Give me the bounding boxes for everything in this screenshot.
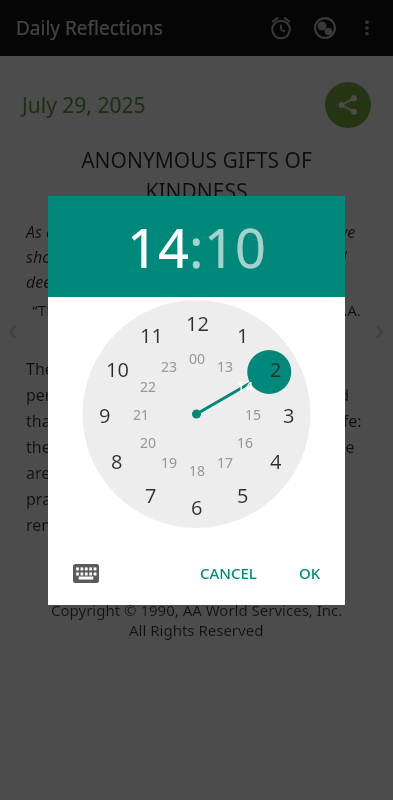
button[interactable]: Set reminder	[259, 6, 303, 50]
button[interactable]: OK	[287, 553, 333, 593]
staticText: 13	[217, 357, 234, 376]
staticText: ‹	[8, 308, 18, 349]
button[interactable]: 1	[227, 322, 259, 346]
button[interactable]: 18	[181, 458, 213, 482]
staticText: Copyright © 1990, AA World Services, Inc…	[51, 600, 343, 620]
staticText: 8	[111, 448, 123, 472]
button[interactable]: 13	[209, 354, 241, 378]
staticText: :	[189, 210, 204, 284]
staticText: 1	[237, 322, 249, 346]
button[interactable]: 7	[135, 482, 167, 506]
staticText: 14	[127, 210, 189, 284]
staticText: There was a time when I thought being a …	[26, 358, 367, 536]
staticText: 14	[237, 377, 254, 396]
staticText: 21	[133, 405, 150, 424]
button[interactable]: 6	[181, 494, 213, 518]
button[interactable]: 4	[260, 448, 292, 472]
staticText: 5	[237, 482, 249, 506]
button[interactable]: 22	[132, 374, 164, 398]
button[interactable]: CANCEL	[188, 553, 269, 593]
staticText: 17	[217, 453, 234, 472]
button[interactable]: 3	[273, 402, 305, 426]
staticText: CANCEL	[200, 563, 257, 583]
button[interactable]: 5	[227, 482, 259, 506]
button[interactable]: 10	[204, 210, 266, 284]
staticText: 11	[140, 322, 163, 346]
staticText: OK	[299, 563, 321, 583]
staticText: All Rights Reserved	[129, 620, 264, 640]
staticText: July 29, 2025	[22, 91, 325, 120]
staticText: 16	[237, 433, 254, 452]
button[interactable]: Switch to text input	[64, 551, 108, 595]
button[interactable]: 11	[135, 322, 167, 346]
button[interactable]: 19	[153, 450, 185, 474]
staticText: 19	[161, 453, 178, 472]
staticText: 4	[270, 448, 282, 472]
staticText: 23	[161, 357, 178, 376]
button[interactable]: 00	[181, 346, 213, 370]
button[interactable]: 17	[209, 450, 241, 474]
button[interactable]: 14	[229, 374, 261, 398]
staticText: 10	[106, 356, 129, 380]
staticText: 3	[283, 402, 295, 426]
staticText: “THE MAN WHO NEVER GOT FOUND OUT,” A.A. …	[26, 300, 367, 344]
button[interactable]: More options	[347, 8, 387, 48]
staticText: 9	[99, 402, 111, 426]
button[interactable]: 16	[229, 430, 261, 454]
button[interactable]: 20	[132, 430, 164, 454]
staticText: 7	[145, 482, 157, 506]
button[interactable]: Language	[303, 6, 347, 50]
staticText: 2	[270, 356, 282, 380]
button[interactable]: 21	[125, 402, 157, 426]
staticText: Daily Reflections	[16, 15, 163, 41]
staticText: 6	[191, 494, 203, 518]
button[interactable]: 23	[153, 354, 185, 378]
staticText: 15	[245, 405, 262, 424]
button[interactable]: 15	[237, 402, 269, 426]
button[interactable]: 10	[101, 356, 133, 380]
button[interactable]: 8	[101, 448, 133, 472]
button[interactable]: 14	[127, 210, 189, 284]
button[interactable]: 2	[260, 356, 292, 380]
staticText: ›	[375, 308, 385, 349]
staticText: 20	[140, 433, 157, 452]
staticText: 00	[189, 349, 206, 368]
button[interactable]: 9	[89, 402, 121, 426]
button[interactable]: Share	[325, 82, 371, 128]
staticText: 22	[140, 377, 157, 396]
button[interactable]: 12	[181, 310, 213, 334]
staticText: 18	[189, 461, 206, 480]
staticText: 10	[204, 210, 266, 284]
staticText: ANONYMOUS GIFTS OF KINDNESS	[40, 146, 353, 205]
staticText: 12	[186, 310, 209, 334]
staticText: As a celebrated speaker once said, the m…	[26, 221, 367, 292]
